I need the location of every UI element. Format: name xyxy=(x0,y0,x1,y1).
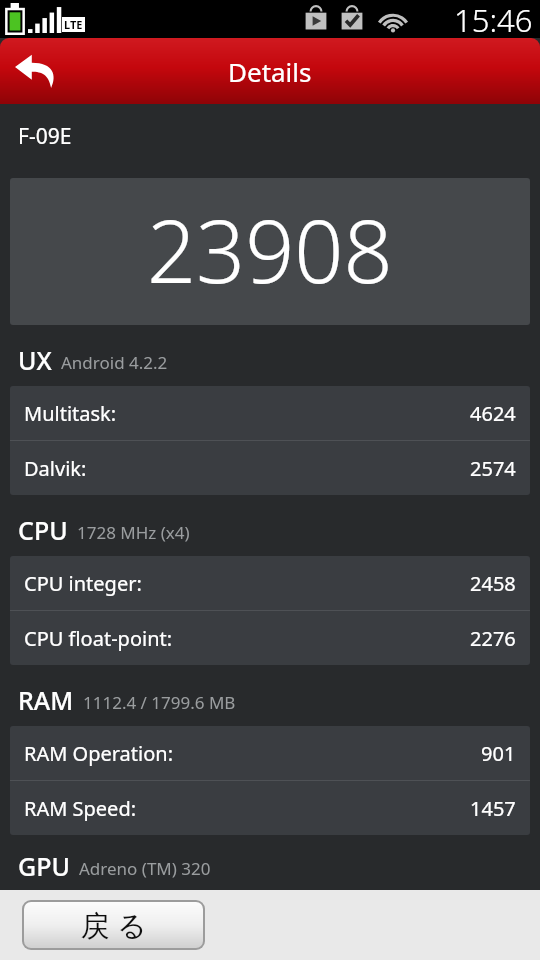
staticText: UX xyxy=(18,343,52,377)
staticText: 15:46 xyxy=(454,0,533,37)
button[interactable]: RAM Operation: xyxy=(10,726,530,780)
staticText: LTE xyxy=(64,17,83,32)
staticText: Adreno (TM) 320 xyxy=(79,857,211,880)
button[interactable]: Multitask: xyxy=(10,386,530,440)
button[interactable]: 戻 る xyxy=(24,902,203,948)
staticText: 2276 xyxy=(470,625,516,652)
staticText: RAM xyxy=(18,683,74,717)
staticText: 901 xyxy=(481,740,516,767)
staticText: 2458 xyxy=(470,570,516,597)
staticText: 戻 る xyxy=(80,905,147,945)
button[interactable]: RAM Speed: xyxy=(10,781,530,835)
staticText: F-09E xyxy=(18,122,72,151)
staticText: 1112.4 / 1799.6 MB xyxy=(83,691,236,714)
staticText: 23908 xyxy=(147,191,393,308)
staticText: 1457 xyxy=(470,795,516,822)
staticText: 2574 xyxy=(470,455,516,482)
staticText: RAM Speed: xyxy=(24,795,137,822)
staticText: Android 4.2.2 xyxy=(61,351,168,374)
staticText: Multitask: xyxy=(24,400,117,427)
staticText: CPU integer: xyxy=(24,570,142,597)
staticText: RAM Operation: xyxy=(24,740,174,767)
button[interactable]: CPU integer: xyxy=(10,556,530,610)
staticText: Dalvik: xyxy=(24,455,87,482)
staticText: 1728 MHz (x4) xyxy=(77,521,190,544)
button[interactable]: Dalvik: xyxy=(10,441,530,495)
staticText: CPU float-point: xyxy=(24,625,173,652)
button[interactable]: Back xyxy=(0,38,72,104)
staticText: 4624 xyxy=(470,400,516,427)
staticText: Details xyxy=(228,54,312,89)
staticText: CPU xyxy=(18,513,68,547)
button[interactable]: CPU float-point: xyxy=(10,611,530,665)
staticText: GPU xyxy=(18,849,70,883)
